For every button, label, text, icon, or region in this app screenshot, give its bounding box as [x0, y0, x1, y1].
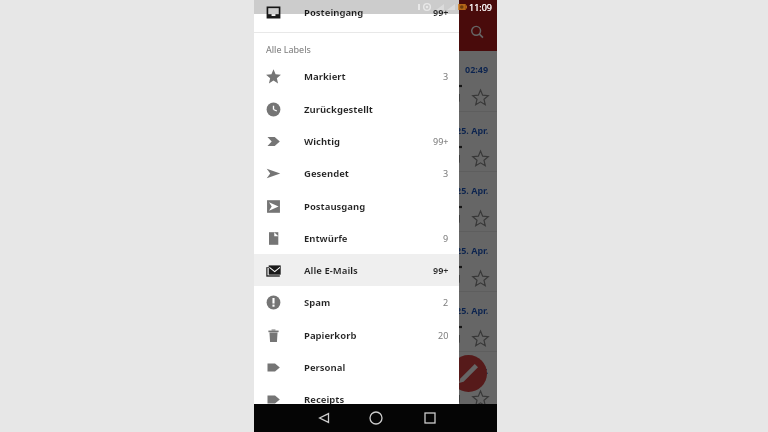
- staticText: g: [454, 89, 461, 103]
- staticText: 25. Apr.: [456, 364, 489, 376]
- staticText: 11:09: [469, 1, 493, 13]
- button[interactable]: Papierkorb: [254, 319, 459, 351]
- staticText: 99+: [433, 264, 449, 276]
- button[interactable]: 25. Apr.: [254, 112, 497, 172]
- button[interactable]: Alle E-Mails: [254, 254, 459, 286]
- staticText: Gesendet: [304, 167, 443, 180]
- staticText: Entwürfe: [304, 232, 443, 245]
- staticText: Postausgang: [304, 200, 449, 213]
- staticText: 25. Apr.: [456, 184, 489, 196]
- button[interactable]: 25. Apr.: [254, 172, 497, 232]
- staticText: 9: [443, 232, 449, 244]
- staticText: g: [454, 150, 461, 164]
- button[interactable]: Postausgang: [254, 190, 459, 222]
- staticText: Spam: [304, 296, 443, 309]
- staticText: 3: [443, 70, 449, 82]
- staticText: g: [454, 210, 461, 224]
- button[interactable]: 25. Apr.: [254, 412, 497, 432]
- button[interactable]: 25. Apr.: [254, 352, 497, 412]
- button[interactable]: Spam: [254, 286, 459, 318]
- staticText: 99+: [433, 135, 449, 147]
- button[interactable]: Markiert: [254, 60, 459, 92]
- staticText: Posteingang: [304, 6, 433, 19]
- staticText: Receipts: [304, 393, 449, 406]
- staticText: 20: [438, 329, 449, 341]
- button[interactable]: Entwürfe: [254, 222, 459, 254]
- staticText: Alle E-Mails: [304, 264, 433, 277]
- staticText: Zurückgestellt: [304, 103, 449, 116]
- button[interactable]: Recents: [420, 408, 440, 428]
- staticText: 02:49: [465, 63, 489, 75]
- button[interactable]: Home: [366, 408, 386, 428]
- button[interactable]: Search: [469, 24, 486, 41]
- staticText: g: [454, 390, 461, 404]
- button[interactable]: Back: [314, 408, 334, 428]
- staticText: 25. Apr.: [456, 244, 489, 256]
- button[interactable]: Gesendet: [254, 157, 459, 189]
- staticText: Papierkorb: [304, 329, 438, 342]
- staticText: Wichtig: [304, 135, 433, 148]
- staticText: 2: [443, 296, 449, 308]
- staticText: g: [454, 270, 461, 284]
- button[interactable]: 25. Apr.: [254, 292, 497, 352]
- button[interactable]: 02:49: [254, 51, 497, 112]
- button[interactable]: Personal: [254, 351, 459, 383]
- staticText: 25. Apr.: [456, 304, 489, 316]
- staticText: 99+: [433, 6, 449, 18]
- staticText: 3: [443, 167, 449, 179]
- button[interactable]: Receipts: [254, 383, 459, 415]
- button[interactable]: 25. Apr.: [254, 232, 497, 292]
- staticText: Markiert: [304, 70, 443, 83]
- button[interactable]: Wichtig: [254, 125, 459, 157]
- staticText: Personal: [304, 361, 449, 374]
- staticText: g: [454, 330, 461, 344]
- staticText: Alle Labels: [266, 43, 311, 55]
- staticText: 25. Apr.: [456, 124, 489, 136]
- button[interactable]: Compose: [450, 355, 487, 392]
- button[interactable]: Posteingang: [254, 1, 459, 23]
- button[interactable]: Zurückgestellt: [254, 93, 459, 125]
